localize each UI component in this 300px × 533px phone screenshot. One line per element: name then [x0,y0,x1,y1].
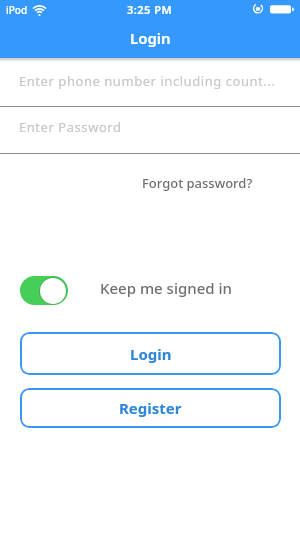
staticText: Login [130,344,172,364]
staticText: 3:25 PM [127,2,173,17]
button[interactable]: Enter Password [0,107,300,146]
button[interactable]: Enter phone number including count... [0,59,300,103]
button[interactable]: Register [20,388,281,428]
button[interactable]: Forgot password? [135,167,260,199]
staticText: Enter Password [19,118,122,136]
staticText: Register [119,398,182,418]
staticText: iPod [6,3,28,17]
button[interactable] [20,276,68,305]
staticText: Keep me signed in [100,278,232,298]
staticText: Enter phone number including count... [19,72,276,90]
staticText: Login [130,28,171,48]
staticText: Forgot password? [142,174,253,192]
button[interactable]: Login [20,332,281,375]
